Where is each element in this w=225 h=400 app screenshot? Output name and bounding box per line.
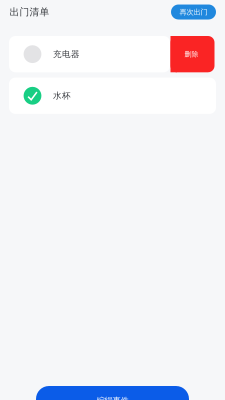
button[interactable]: 水杯	[9, 78, 216, 114]
staticText: 水杯	[53, 90, 71, 101]
staticText: 出门清单	[9, 6, 49, 18]
button[interactable]: 再次出门	[171, 4, 216, 19]
staticText: 编辑事件	[96, 395, 128, 400]
staticText: 再次出门	[179, 7, 207, 17]
button[interactable]: 充电器	[9, 36, 170, 72]
button[interactable]: 编辑事件	[36, 386, 189, 400]
button[interactable]: 删除	[170, 36, 214, 72]
staticText: 删除	[184, 50, 198, 58]
staticText: 充电器	[53, 49, 80, 60]
